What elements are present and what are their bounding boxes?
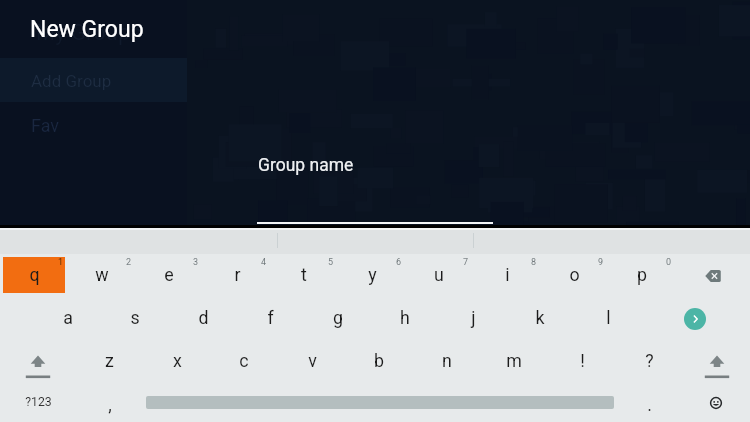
button[interactable]: u (408, 254, 470, 294)
button[interactable]: s (104, 297, 166, 337)
button[interactable]: Backspace (689, 256, 737, 296)
staticText: f (267, 307, 274, 328)
button[interactable] (0, 228, 750, 254)
button[interactable]: p (611, 254, 673, 294)
button[interactable]: n (416, 340, 478, 380)
button[interactable]: c (213, 340, 275, 380)
button[interactable]: q (3, 254, 65, 294)
staticText: k (535, 307, 545, 328)
staticText: 3 (193, 257, 199, 268)
staticText: ?123 (25, 395, 52, 409)
button[interactable]: k (509, 297, 571, 337)
staticText: . (647, 394, 652, 415)
button[interactable]: x (146, 340, 208, 380)
button[interactable]: i (476, 254, 538, 294)
button[interactable]: . (618, 384, 680, 422)
button[interactable]: r (206, 254, 268, 294)
staticText: y (368, 264, 377, 285)
staticText: 9 (598, 257, 604, 268)
staticText: j (471, 307, 476, 328)
button[interactable]: e (138, 254, 200, 294)
staticText: 1 (58, 257, 64, 268)
staticText: i (505, 264, 510, 285)
staticText: t (301, 264, 307, 285)
button[interactable]: a (37, 297, 99, 337)
button[interactable]: ? (618, 340, 680, 380)
button[interactable]: w (71, 254, 133, 294)
staticText: l (606, 307, 611, 328)
staticText: My Groups (36, 20, 142, 46)
staticText: p (637, 264, 647, 285)
button[interactable]: h (374, 297, 436, 337)
staticText: o (569, 264, 580, 285)
staticText: z (105, 350, 114, 371)
staticText: Fav (31, 115, 60, 136)
staticText: a (63, 307, 73, 328)
staticText: Group name (258, 155, 354, 176)
staticText: Add Group (31, 71, 112, 91)
staticText: 5 (328, 257, 334, 268)
button[interactable]: Shift (14, 344, 62, 384)
staticText: , (108, 394, 112, 415)
staticText: 8 (531, 257, 537, 268)
staticText: r (234, 264, 241, 285)
button[interactable]: Add Group (0, 58, 187, 102)
button[interactable]: d (172, 297, 234, 337)
staticText: x (173, 350, 182, 371)
button[interactable]: y (341, 254, 403, 294)
staticText: q (29, 264, 40, 285)
button[interactable]: l (577, 297, 639, 337)
button[interactable]: o (543, 254, 605, 294)
staticText: ? (645, 350, 654, 371)
staticText: u (434, 264, 444, 285)
staticText: m (506, 350, 522, 371)
button[interactable]: , (79, 384, 141, 422)
button[interactable]: ?123 (7, 382, 69, 422)
staticText: c (239, 350, 249, 371)
button[interactable]: Next (684, 308, 706, 330)
staticText: e (164, 264, 174, 285)
button[interactable]: f (239, 297, 301, 337)
staticText: 4 (261, 257, 267, 268)
staticText: s (130, 307, 140, 328)
button[interactable]: Group name (257, 146, 493, 182)
button[interactable]: g (307, 297, 369, 337)
button[interactable]: m (483, 340, 545, 380)
button[interactable]: q (3, 257, 65, 293)
staticText: ! (580, 350, 585, 371)
staticText: v (308, 350, 317, 371)
button[interactable]: z (78, 340, 140, 380)
staticText: g (333, 307, 343, 328)
staticText: 6 (396, 257, 402, 268)
staticText: 0 (666, 257, 672, 268)
staticText: 2 (126, 257, 132, 268)
staticText: n (442, 350, 452, 371)
staticText: w (95, 264, 109, 285)
button[interactable]: Emoji (692, 383, 740, 422)
button[interactable]: j (442, 297, 504, 337)
button[interactable]: ! (551, 340, 613, 380)
staticText: b (374, 350, 384, 371)
button[interactable]: t (273, 254, 335, 294)
button[interactable]: v (281, 340, 343, 380)
staticText: h (400, 307, 410, 328)
staticText: 7 (463, 257, 469, 268)
button[interactable]: Shift (693, 344, 741, 384)
staticText: New Group (30, 16, 144, 43)
staticText: d (198, 307, 209, 328)
button[interactable]: b (348, 340, 410, 380)
